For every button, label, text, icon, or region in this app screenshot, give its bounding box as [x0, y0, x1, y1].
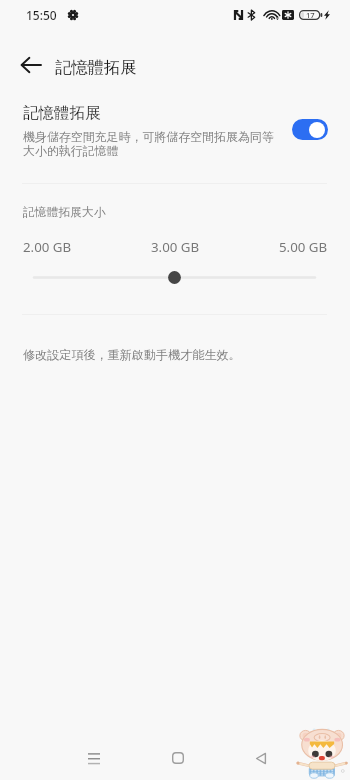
button[interactable]: Home — [158, 738, 198, 778]
button[interactable]: Back — [241, 738, 281, 778]
staticText: 修改設定項後，重新啟動手機才能生效。 — [23, 347, 241, 362]
button[interactable]: Memory expansion size slider — [24, 264, 326, 290]
staticText: 機身儲存空間充足時，可將儲存空間拓展為同等大小的執行記憶體 — [23, 129, 279, 159]
staticText: 2.00 GB — [23, 238, 72, 254]
button[interactable]: Toggle memory expansion — [292, 119, 328, 140]
staticText: 記憶體拓展 — [23, 103, 101, 123]
staticText: 記憶體拓展大小 — [23, 205, 106, 220]
staticText: 15:50 — [26, 7, 57, 23]
button[interactable]: Recent apps — [74, 738, 114, 778]
staticText: 17 — [306, 10, 315, 20]
button[interactable]: 記憶體拓展 — [0, 94, 350, 166]
button[interactable]: Back — [9, 43, 53, 87]
staticText: 5.00 GB — [279, 238, 328, 254]
staticText: 記憶體拓展 — [55, 57, 137, 78]
staticText: 3.00 GB — [151, 238, 200, 254]
